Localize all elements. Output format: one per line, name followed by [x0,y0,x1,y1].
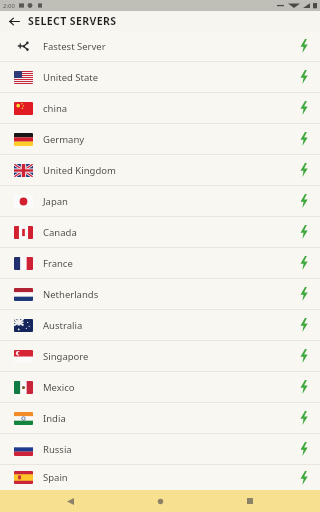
button[interactable]: Back [0,11,28,31]
staticText: Russia [43,443,72,456]
staticText: India [43,412,66,425]
button[interactable]: Back [50,490,90,512]
button[interactable]: Russia [0,434,320,464]
other: Connect [296,161,312,179]
other: Connect [296,130,312,148]
other: Connect [296,37,312,55]
other: Connect [296,409,312,427]
staticText: United Kingdom [43,164,116,177]
staticText: Spain [43,471,68,484]
other: Connect [296,440,312,458]
button[interactable]: Netherlands [0,279,320,309]
button[interactable]: Japan [0,186,320,216]
other: Connect [296,378,312,396]
staticText: 2:00 [3,2,15,10]
staticText: Australia [43,319,83,332]
button[interactable]: Mexico [0,372,320,402]
button[interactable]: Singapore [0,341,320,371]
button[interactable]: Home [140,490,180,512]
other: Connect [296,254,312,272]
button[interactable]: Germany [0,124,320,154]
other: Connect [296,316,312,334]
button[interactable]: Spain [0,465,320,490]
staticText: Germany [43,133,85,146]
button[interactable]: France [0,248,320,278]
staticText: SELECT SERVERS [28,14,117,28]
button[interactable]: United Kingdom [0,155,320,185]
staticText: Fastest Server [43,40,106,53]
other: Connect [296,469,312,487]
staticText: Japan [43,195,68,208]
button[interactable]: United State [0,62,320,92]
other: Connect [296,68,312,86]
other: Connect [296,192,312,210]
staticText: Netherlands [43,288,99,301]
staticText: china [43,102,68,115]
other: Connect [296,285,312,303]
button[interactable]: India [0,403,320,433]
button[interactable]: Fastest Server [0,31,320,61]
staticText: Mexico [43,381,75,394]
other: Connect [296,347,312,365]
other: Connect [296,99,312,117]
button[interactable]: Canada [0,217,320,247]
button[interactable]: Australia [0,310,320,340]
button[interactable]: china [0,93,320,123]
staticText: Canada [43,226,77,239]
staticText: United State [43,71,99,84]
staticText: France [43,257,73,270]
staticText: Singapore [43,350,89,363]
button[interactable]: Recents [230,490,270,512]
other: Connect [296,223,312,241]
